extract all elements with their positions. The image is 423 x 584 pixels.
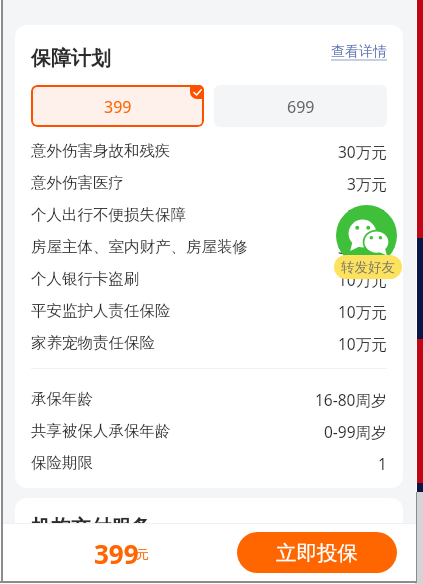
staticText: 保障计划: [31, 46, 111, 71]
staticText: 个人银行卡盗刷: [31, 269, 140, 289]
staticText: 10万元: [338, 269, 387, 290]
staticText: 30万元: [338, 237, 387, 258]
staticText: 立即投保: [276, 540, 358, 566]
staticText: 3万元: [347, 173, 387, 194]
staticText: 意外伤害医疗: [31, 173, 124, 193]
button[interactable]: 查看详情: [331, 43, 387, 61]
staticText: 共享被保人承保年龄: [31, 421, 171, 441]
staticText: 家养宠物责任保险: [31, 333, 155, 353]
staticText: 平安监护人责任保险: [31, 301, 171, 321]
button[interactable]: 立即投保: [237, 532, 397, 573]
button[interactable]: 个人银行卡盗刷: [31, 263, 387, 295]
button[interactable]: 399: [31, 85, 204, 127]
staticText: 转发好友: [341, 259, 395, 276]
staticText: 10万元: [338, 333, 387, 354]
staticText: 个人出行不便损失保障: [31, 205, 186, 225]
staticText: 10万元: [338, 301, 387, 322]
staticText: 16-80周岁: [315, 389, 387, 410]
button[interactable]: 共享被保人承保年龄: [31, 415, 387, 447]
staticText: 查看详情: [331, 43, 387, 61]
button[interactable]: 房屋主体、室内财产、房屋装修: [31, 231, 387, 263]
button[interactable]: 转发好友: [336, 205, 397, 266]
button[interactable]: 699: [214, 85, 387, 127]
staticText: 30万元: [338, 141, 387, 162]
staticText: 承保年龄: [31, 389, 93, 409]
button[interactable]: 保险期限: [31, 447, 387, 479]
button[interactable]: 意外伤害医疗: [31, 167, 387, 199]
staticText: 保险期限: [31, 453, 93, 473]
staticText: 房屋主体、室内财产、房屋装修: [31, 237, 248, 257]
staticText: 399: [94, 536, 139, 571]
staticText: 意外伤害身故和残疾: [31, 141, 171, 161]
button[interactable]: 家养宠物责任保险: [31, 327, 387, 359]
staticText: 699: [287, 96, 315, 118]
staticText: 机构交付服务: [31, 515, 151, 540]
button[interactable]: 承保年龄: [31, 383, 387, 415]
button[interactable]: 个人出行不便损失保障: [31, 199, 387, 231]
staticText: 元: [136, 546, 149, 562]
staticText: 1: [378, 453, 387, 474]
button[interactable]: 转发好友: [334, 255, 402, 279]
staticText: 5万元: [347, 205, 387, 226]
button[interactable]: 意外伤害身故和残疾: [31, 135, 387, 167]
button[interactable]: 平安监护人责任保险: [31, 295, 387, 327]
staticText: 399: [104, 96, 132, 118]
staticText: 0-99周岁: [324, 421, 387, 442]
